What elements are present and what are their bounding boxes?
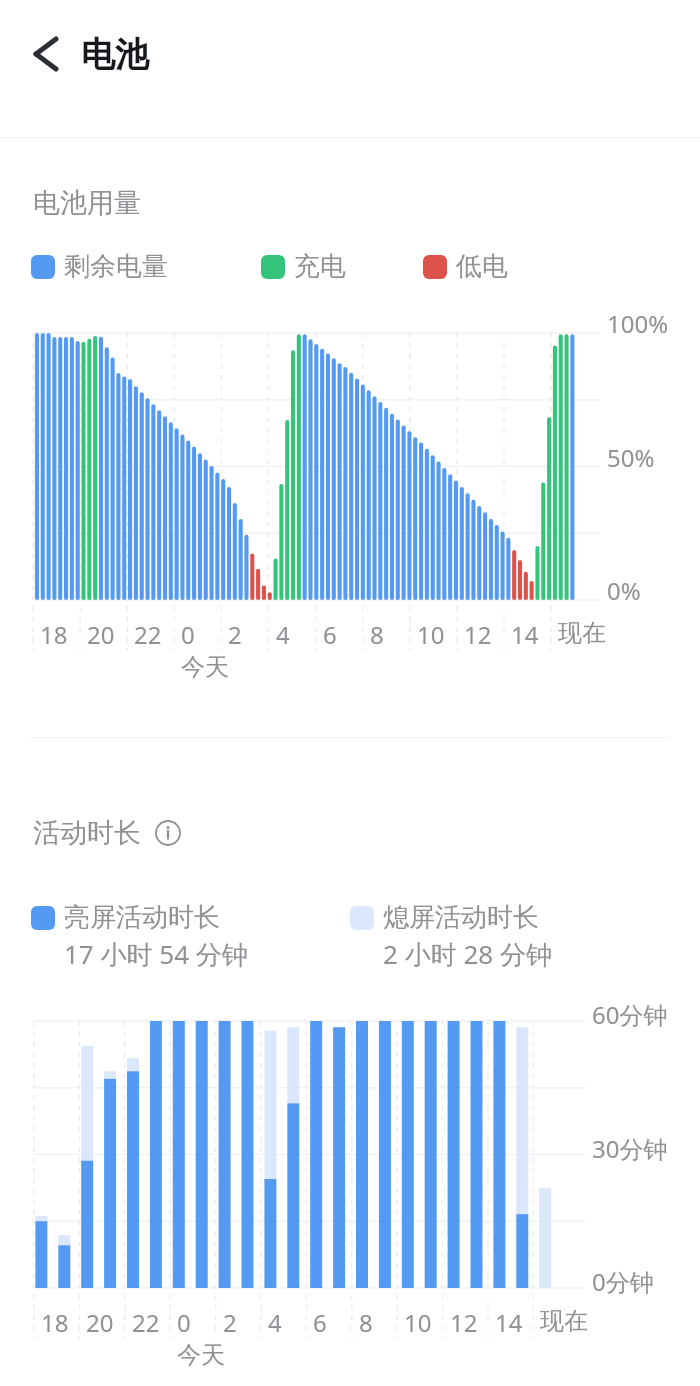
staticText: 12 xyxy=(464,618,492,651)
staticText: 剩余电量 xyxy=(64,250,168,283)
button[interactable]: 熄屏活动时长 xyxy=(350,901,539,934)
staticText: 8 xyxy=(359,1306,373,1339)
staticText: 6 xyxy=(313,1306,327,1339)
staticText: 20 xyxy=(86,1306,114,1339)
staticText: 0分钟 xyxy=(592,1265,654,1298)
staticText: 22 xyxy=(132,1306,160,1339)
staticText: 0 xyxy=(181,618,195,651)
staticText: 今天 xyxy=(177,1340,225,1370)
staticText: 12 xyxy=(450,1306,478,1339)
button[interactable]: More information xyxy=(152,817,184,849)
button[interactable]: 低电 xyxy=(423,250,508,283)
staticText: 电池 xyxy=(81,33,149,76)
staticText: 2 小时 28 分钟 xyxy=(383,936,552,972)
staticText: 2 xyxy=(228,618,242,651)
staticText: 今天 xyxy=(181,652,229,682)
staticText: 10 xyxy=(417,618,445,651)
staticText: 4 xyxy=(276,618,290,651)
staticText: 17 小时 54 分钟 xyxy=(64,936,248,972)
button[interactable]: 剩余电量 xyxy=(31,250,168,283)
staticText: 8 xyxy=(370,618,384,651)
staticText: 现在 xyxy=(558,618,606,648)
staticText: 100% xyxy=(607,307,669,340)
staticText: 充电 xyxy=(294,250,346,283)
staticText: 0 xyxy=(177,1306,191,1339)
staticText: 电池用量 xyxy=(33,186,141,220)
staticText: 30分钟 xyxy=(592,1132,668,1165)
staticText: 50% xyxy=(607,441,655,474)
staticText: 22 xyxy=(134,618,162,651)
staticText: 熄屏活动时长 xyxy=(383,901,539,934)
staticText: 0% xyxy=(607,574,641,607)
staticText: 活动时长 xyxy=(33,816,141,850)
staticText: 亮屏活动时长 xyxy=(64,901,220,934)
staticText: 10 xyxy=(404,1306,432,1339)
button[interactable]: 充电 xyxy=(261,250,346,283)
staticText: 18 xyxy=(41,1306,69,1339)
staticText: 4 xyxy=(268,1306,282,1339)
staticText: 14 xyxy=(511,618,539,651)
button[interactable]: Back xyxy=(12,24,72,84)
staticText: 18 xyxy=(40,618,68,651)
staticText: 现在 xyxy=(540,1306,588,1336)
staticText: 20 xyxy=(87,618,115,651)
button[interactable]: 亮屏活动时长 xyxy=(31,901,220,934)
staticText: 60分钟 xyxy=(592,998,668,1031)
staticText: 低电 xyxy=(456,250,508,283)
staticText: 6 xyxy=(323,618,337,651)
staticText: 14 xyxy=(495,1306,523,1339)
staticText: 2 xyxy=(223,1306,237,1339)
